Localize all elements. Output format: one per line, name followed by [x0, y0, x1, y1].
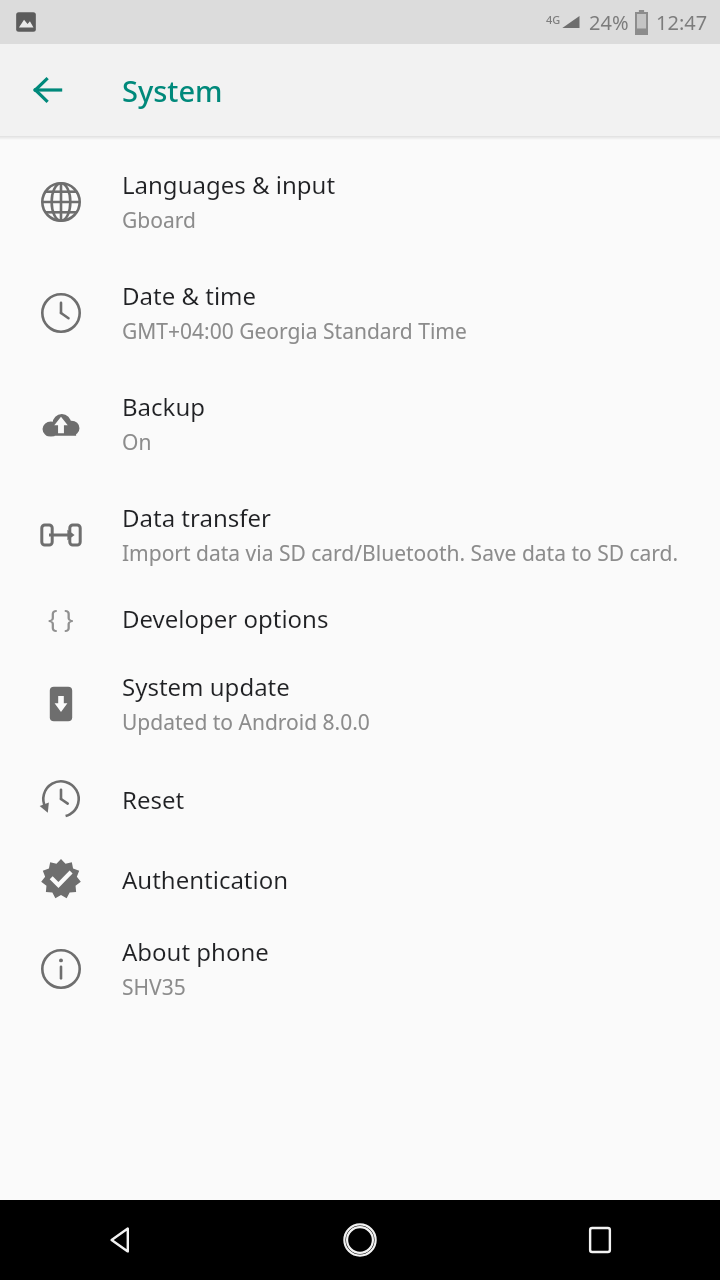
- staticText: Languages & input: [122, 168, 336, 201]
- button[interactable]: { }: [0, 582, 720, 654]
- staticText: { }: [48, 601, 74, 635]
- staticText: SHV35: [122, 973, 186, 1002]
- staticText: Backup: [122, 390, 205, 423]
- staticText: Gboard: [122, 206, 196, 235]
- button[interactable]: System update: [0, 654, 720, 759]
- staticText: Updated to Android 8.0.0: [122, 708, 370, 737]
- staticText: System update: [122, 670, 290, 703]
- staticText: Import data via SD card/Bluetooth. Save …: [122, 539, 679, 568]
- staticText: Data transfer: [122, 501, 271, 534]
- button[interactable]: Backup: [0, 368, 720, 479]
- button[interactable]: Reset: [0, 759, 720, 839]
- button[interactable]: Date & time: [0, 257, 720, 368]
- staticText: About phone: [122, 935, 269, 968]
- button[interactable]: Authentication: [0, 839, 720, 919]
- button[interactable]: Data transfer: [0, 479, 720, 582]
- staticText: System: [122, 71, 223, 110]
- staticText: Reset: [122, 783, 185, 816]
- staticText: 12:47: [656, 9, 708, 36]
- staticText: GMT+04:00 Georgia Standard Time: [122, 317, 467, 346]
- staticText: Date & time: [122, 279, 257, 312]
- staticText: 4G: [546, 12, 561, 27]
- staticText: Developer options: [122, 602, 329, 635]
- button[interactable]: Back: [20, 62, 76, 118]
- button[interactable]: Back: [0, 1200, 240, 1280]
- button[interactable]: Languages & input: [0, 142, 720, 257]
- staticText: Authentication: [122, 863, 289, 896]
- button[interactable]: About phone: [0, 919, 720, 1024]
- staticText: 24%: [589, 9, 629, 36]
- staticText: On: [122, 428, 152, 457]
- button[interactable]: Recents: [480, 1200, 720, 1280]
- button[interactable]: Home: [240, 1200, 480, 1280]
